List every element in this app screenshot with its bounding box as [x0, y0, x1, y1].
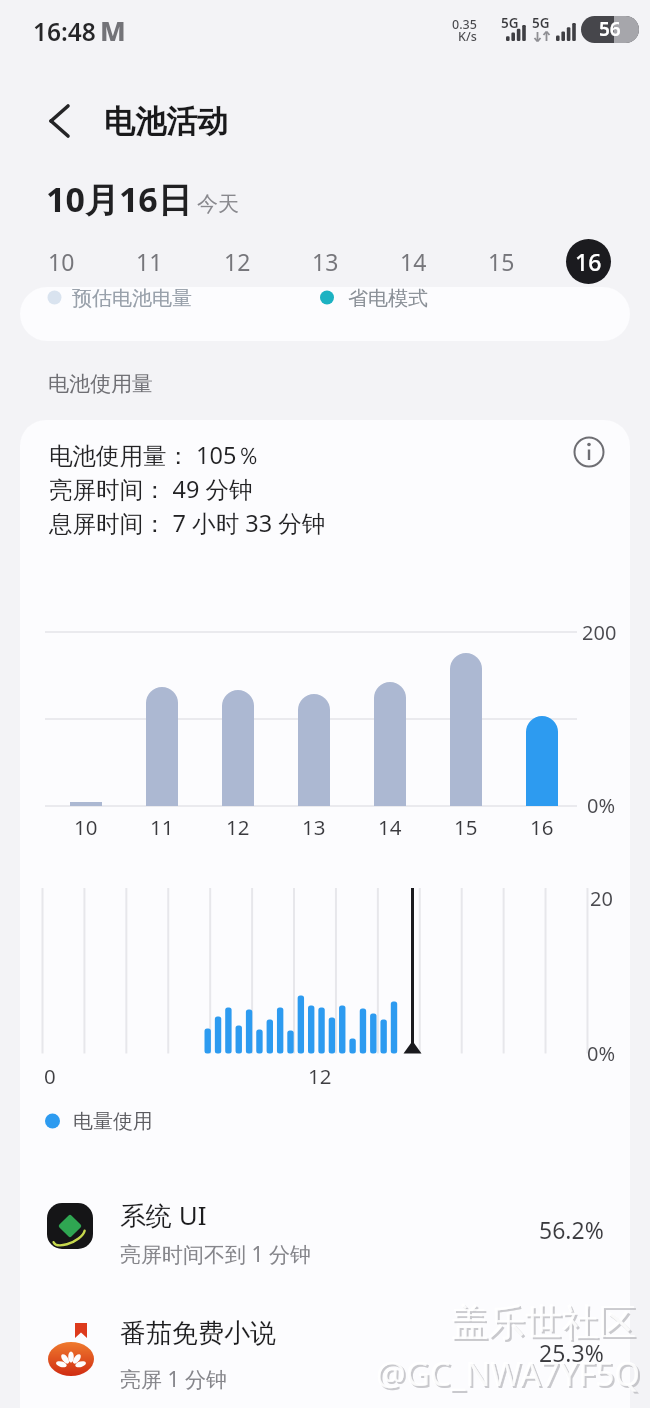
- staticText: @GC_NWA7YF5Q: [376, 1351, 641, 1396]
- staticText: 11: [136, 246, 163, 277]
- staticText: 0%: [587, 1040, 616, 1067]
- staticText: 亮屏 1 分钟: [120, 1365, 227, 1394]
- staticText: 盖乐世社区: [451, 1299, 636, 1346]
- staticText: 10: [48, 246, 75, 277]
- staticText: 电池使用量： 105％: [49, 439, 260, 471]
- staticText: 11: [150, 813, 174, 841]
- staticText: 56: [599, 16, 621, 42]
- staticText: 10月16日: [46, 176, 192, 222]
- staticText: 16:48: [33, 15, 96, 48]
- staticText: 56.2%: [539, 1214, 604, 1245]
- button[interactable]: 15: [479, 239, 523, 284]
- staticText: 15: [454, 813, 478, 841]
- staticText: 5G: [501, 14, 519, 32]
- staticText: 16: [530, 813, 554, 841]
- staticText: 电量使用: [73, 1109, 153, 1134]
- staticText: 电池使用量: [48, 371, 153, 397]
- staticText: 16: [575, 246, 602, 277]
- staticText: 0%: [587, 792, 616, 819]
- staticText: 系统 UI: [120, 1197, 207, 1233]
- staticText: 5G: [532, 14, 550, 32]
- staticText: 0.35: [452, 16, 477, 33]
- button[interactable]: [570, 434, 608, 472]
- staticText: 0: [44, 1062, 56, 1090]
- staticText: 电池活动: [104, 102, 228, 141]
- staticText: 今天: [197, 191, 239, 217]
- staticText: M: [100, 12, 126, 49]
- button[interactable]: 11: [127, 239, 171, 284]
- staticText: 15: [488, 246, 515, 277]
- staticText: 12: [308, 1062, 332, 1090]
- staticText: K/s: [458, 28, 477, 45]
- staticText: 13: [312, 246, 339, 277]
- button[interactable]: [36, 99, 82, 143]
- staticText: 省电模式: [348, 286, 428, 311]
- staticText: 25.3%: [539, 1337, 604, 1368]
- button[interactable]: 13: [303, 239, 347, 284]
- button[interactable]: 14: [391, 239, 435, 284]
- staticText: 番茄免费小说: [120, 1317, 276, 1350]
- button[interactable]: 16: [566, 239, 611, 284]
- staticText: 亮屏时间不到 1 分钟: [120, 1240, 311, 1269]
- staticText: 预估电池电量: [72, 286, 192, 311]
- staticText: 12: [226, 813, 250, 841]
- staticText: 盖乐世社区: [453, 1301, 638, 1348]
- staticText: 20: [590, 885, 613, 912]
- button[interactable]: 10: [39, 239, 83, 284]
- button[interactable]: [20, 1305, 630, 1408]
- button[interactable]: 12: [215, 239, 259, 284]
- staticText: @GC_NWA7YF5Q: [378, 1353, 643, 1398]
- button[interactable]: [20, 1186, 630, 1286]
- staticText: 息屏时间： 7 小时 33 分钟: [49, 507, 326, 539]
- staticText: 亮屏时间： 49 分钟: [49, 473, 253, 505]
- staticText: 14: [378, 813, 402, 841]
- staticText: 12: [224, 246, 251, 277]
- staticText: 200: [582, 619, 617, 646]
- staticText: 13: [302, 813, 326, 841]
- staticText: 10: [74, 813, 98, 841]
- staticText: 14: [400, 246, 427, 277]
